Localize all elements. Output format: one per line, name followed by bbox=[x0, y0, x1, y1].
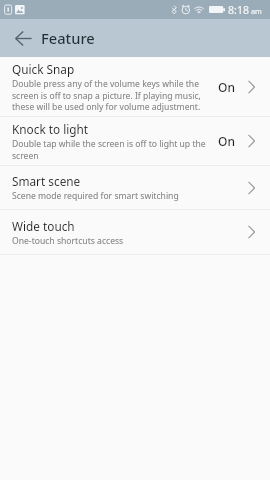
staticText: On bbox=[218, 79, 235, 95]
staticText: On bbox=[218, 133, 235, 149]
staticText: 8:18 bbox=[228, 3, 250, 17]
button[interactable]: Knock to light bbox=[0, 117, 270, 165]
button[interactable]: Back bbox=[0, 19, 46, 57]
staticText: Double press any of the volume keys whil… bbox=[12, 78, 213, 112]
staticText: Wide touch bbox=[12, 218, 75, 234]
staticText: Smart scene bbox=[12, 173, 81, 189]
button[interactable]: Smart scene bbox=[0, 166, 270, 209]
staticText: Knock to light bbox=[12, 121, 89, 137]
staticText: Feature bbox=[41, 28, 95, 48]
staticText: am bbox=[251, 6, 262, 16]
button[interactable]: Quick Snap bbox=[0, 57, 270, 116]
staticText: Scene mode required for smart switching bbox=[12, 190, 179, 202]
staticText: Quick Snap bbox=[12, 61, 75, 77]
button[interactable]: Wide touch bbox=[0, 210, 270, 254]
staticText: Double tap while the screen is off to li… bbox=[12, 138, 213, 161]
staticText: One-touch shortcuts access bbox=[12, 235, 124, 247]
